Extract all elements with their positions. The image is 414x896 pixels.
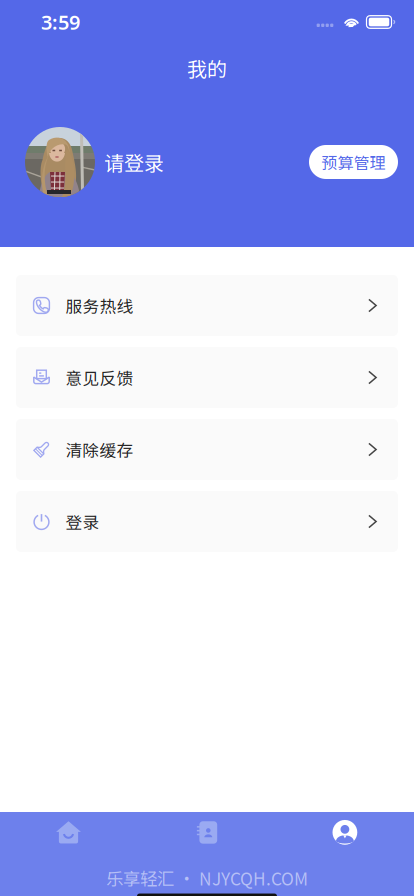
- button[interactable]: 意见反馈: [16, 347, 398, 408]
- staticText: 请登录: [104, 147, 164, 176]
- staticText: 服务热线: [65, 293, 133, 317]
- staticText: 意见反馈: [65, 365, 133, 389]
- staticText: 乐享轻汇 • NJYCQH.COM: [106, 865, 308, 891]
- button[interactable]: 清除缓存: [16, 419, 398, 480]
- staticText: 我的: [187, 53, 227, 82]
- staticText: 预算管理: [321, 150, 385, 174]
- staticText: 3:59: [41, 9, 80, 35]
- button[interactable]: 服务热线: [16, 275, 398, 336]
- button[interactable]: 首页: [0, 810, 138, 854]
- button[interactable]: 我的: [276, 810, 414, 854]
- staticText: 登录: [65, 509, 99, 533]
- staticText: 清除缓存: [65, 437, 133, 461]
- button[interactable]: 通讯录: [138, 810, 276, 854]
- button[interactable]: 预算管理: [309, 145, 398, 179]
- button[interactable]: 登录: [16, 491, 398, 552]
